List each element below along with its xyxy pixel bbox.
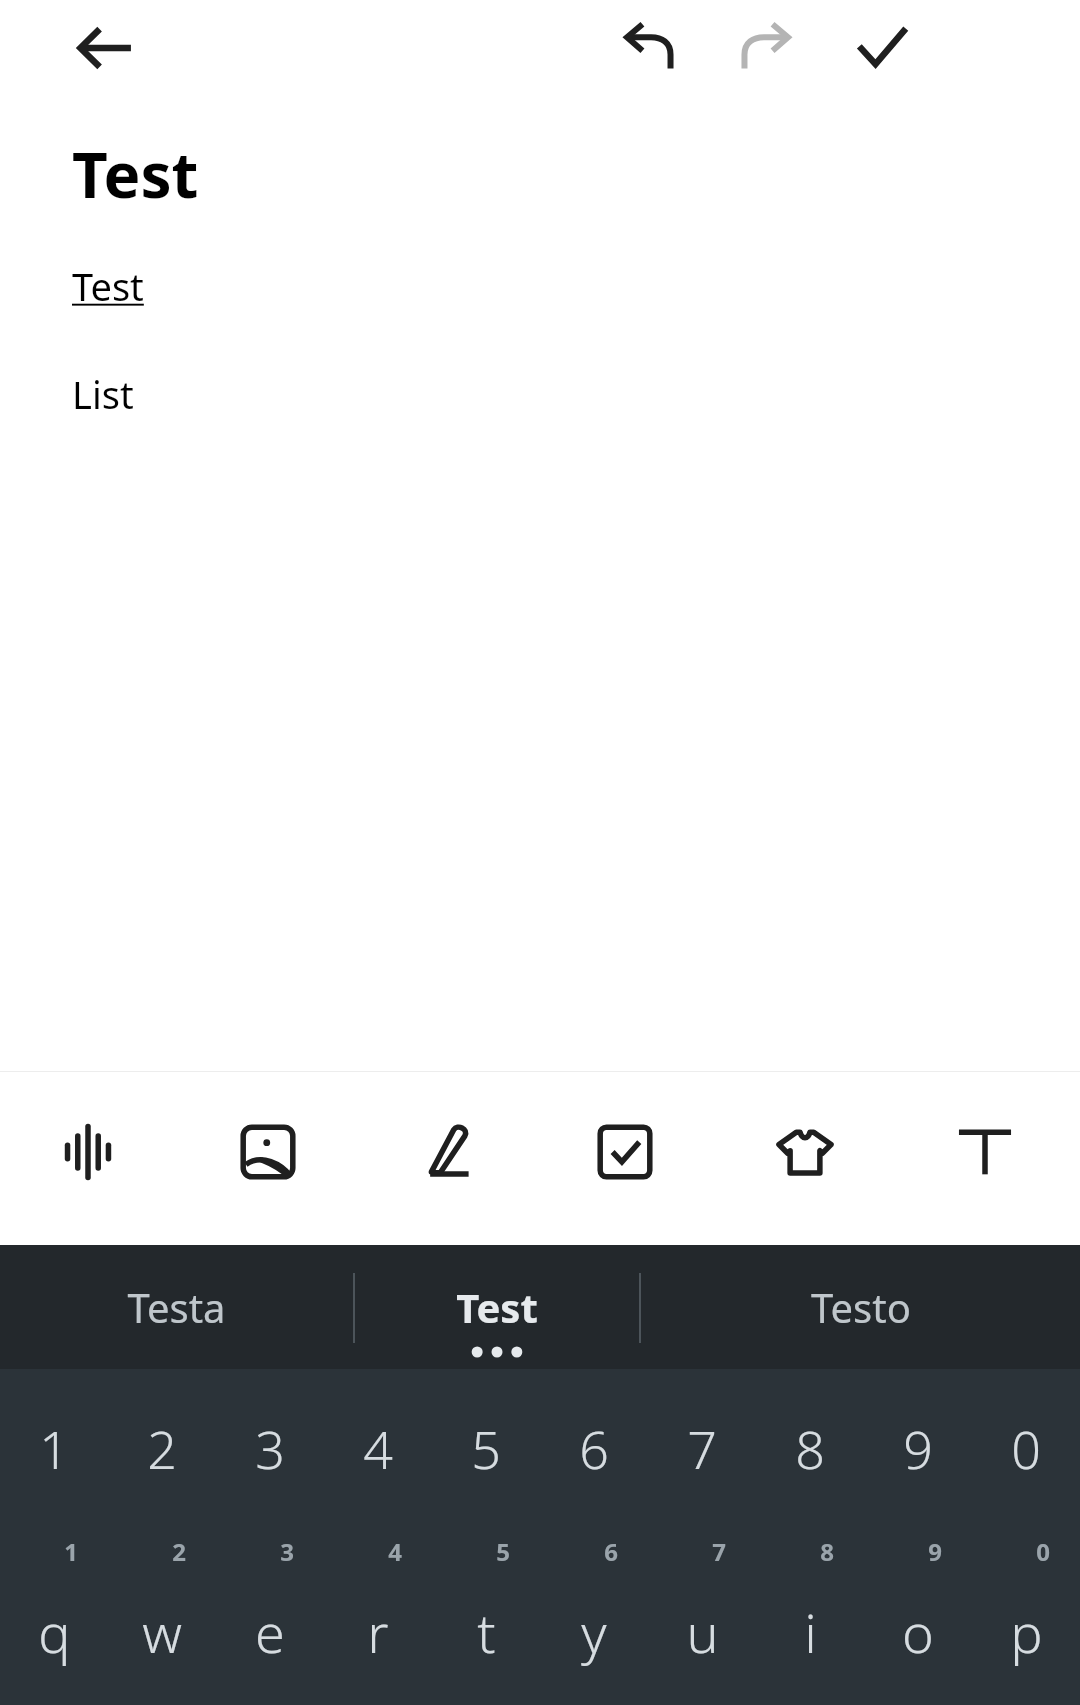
button[interactable]: 1 xyxy=(0,1401,108,1495)
button[interactable]: Test xyxy=(355,1245,639,1369)
staticText: t xyxy=(477,1595,496,1669)
staticText: 2 xyxy=(172,1535,186,1568)
staticText: o xyxy=(902,1595,934,1669)
button[interactable]: 3 xyxy=(216,1401,324,1495)
button[interactable]: 0 xyxy=(972,1535,1080,1675)
staticText: q xyxy=(38,1595,71,1669)
staticText: 5 xyxy=(496,1535,510,1568)
button[interactable]: 4 xyxy=(324,1401,432,1495)
button[interactable]: Save xyxy=(834,3,930,93)
button[interactable]: 9 xyxy=(864,1535,972,1675)
button[interactable]: Undo xyxy=(602,3,698,93)
staticText: 1 xyxy=(39,1413,69,1484)
staticText: 9 xyxy=(928,1535,942,1568)
button[interactable]: Draw xyxy=(390,1092,510,1212)
staticText: 5 xyxy=(471,1413,501,1484)
button[interactable]: Redo xyxy=(717,3,813,93)
button[interactable]: 7 xyxy=(648,1535,756,1675)
staticText: w xyxy=(142,1595,182,1669)
button[interactable]: 7 xyxy=(648,1401,756,1495)
button[interactable]: Sticker xyxy=(745,1092,865,1212)
staticText: u xyxy=(686,1595,719,1669)
staticText: 0 xyxy=(1036,1535,1050,1568)
button[interactable]: 6 xyxy=(540,1535,648,1675)
staticText: List xyxy=(72,368,134,420)
staticText: Testo xyxy=(811,1280,911,1334)
button[interactable]: 3 xyxy=(216,1535,324,1675)
button[interactable]: Testo xyxy=(641,1245,1080,1369)
button[interactable]: 6 xyxy=(540,1401,648,1495)
button[interactable]: 9 xyxy=(864,1401,972,1495)
staticText: 1 xyxy=(64,1535,78,1568)
staticText: 7 xyxy=(687,1413,717,1484)
button[interactable]: 1 xyxy=(0,1535,108,1675)
staticText: i xyxy=(804,1595,817,1669)
staticText: 8 xyxy=(820,1535,834,1568)
staticText: 8 xyxy=(795,1413,825,1484)
button[interactable]: Back xyxy=(57,3,153,93)
staticText: 4 xyxy=(363,1413,393,1484)
button[interactable]: 8 xyxy=(756,1401,864,1495)
staticText: y xyxy=(581,1595,607,1669)
button[interactable]: 2 xyxy=(108,1535,216,1675)
staticText: p xyxy=(1010,1595,1043,1669)
button[interactable]: 5 xyxy=(432,1535,540,1675)
button[interactable]: Testa xyxy=(0,1245,353,1369)
staticText: Testa xyxy=(127,1280,226,1334)
staticText: r xyxy=(367,1595,389,1669)
staticText: 9 xyxy=(903,1413,933,1484)
button[interactable]: Text format xyxy=(925,1092,1045,1212)
staticText: 6 xyxy=(579,1413,609,1484)
staticText: 6 xyxy=(604,1535,618,1568)
staticText: 7 xyxy=(712,1535,726,1568)
button[interactable]: 5 xyxy=(432,1401,540,1495)
staticText: 3 xyxy=(255,1413,285,1484)
staticText: 3 xyxy=(280,1535,294,1568)
staticText: Test xyxy=(72,260,144,312)
button[interactable]: Insert image xyxy=(208,1092,328,1212)
staticText: 2 xyxy=(147,1413,177,1484)
button[interactable]: 0 xyxy=(972,1401,1080,1495)
staticText: e xyxy=(255,1595,285,1669)
staticText: 4 xyxy=(388,1535,402,1568)
button[interactable]: Checklist xyxy=(565,1092,685,1212)
staticText: 0 xyxy=(1011,1413,1041,1484)
button[interactable]: Record audio xyxy=(28,1092,148,1212)
staticText: Test xyxy=(456,1280,538,1334)
button[interactable]: 2 xyxy=(108,1401,216,1495)
button[interactable]: 8 xyxy=(756,1535,864,1675)
staticText: Test xyxy=(72,132,199,216)
button[interactable]: 4 xyxy=(324,1535,432,1675)
